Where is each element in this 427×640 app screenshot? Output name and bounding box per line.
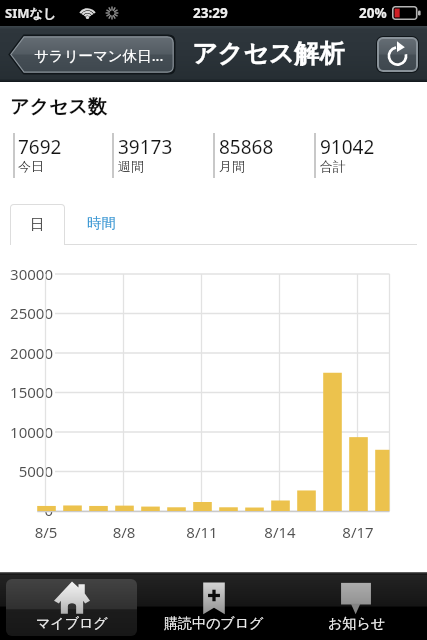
button[interactable]: 日 [10, 204, 65, 245]
staticText: 8/8 [99, 522, 149, 542]
staticText: 30000 [0, 264, 53, 284]
staticText: アクセス数 [10, 95, 107, 119]
staticText: 月間 [219, 158, 245, 174]
button[interactable]: マイブログ [6, 579, 137, 636]
staticText: 7692 [18, 134, 62, 160]
staticText: 購読中のブログ [164, 615, 264, 633]
staticText: 日 [30, 215, 45, 233]
button[interactable]: 時間 [66, 204, 136, 244]
staticText: 20000 [0, 343, 53, 363]
staticText: 8/17 [333, 522, 383, 542]
staticText: 週間 [118, 158, 144, 174]
staticText: 91042 [320, 134, 375, 160]
staticText: 8/11 [177, 522, 227, 542]
staticText: 85868 [219, 134, 274, 160]
button[interactable]: 購読中のブログ [149, 579, 279, 636]
button[interactable]: Refresh [377, 37, 418, 72]
staticText: 8/14 [255, 522, 305, 542]
staticText: 8/5 [21, 522, 71, 542]
staticText: 15000 [0, 382, 53, 402]
staticText: 5000 [0, 461, 53, 481]
staticText: 23:29 [193, 4, 228, 22]
staticText: お知らせ [328, 615, 385, 633]
staticText: 時間 [87, 214, 116, 232]
staticText: 0 [0, 500, 53, 520]
staticText: 今日 [18, 158, 44, 174]
staticText: 20% [359, 4, 387, 22]
staticText: 25000 [0, 303, 53, 323]
staticText: 39173 [118, 134, 173, 160]
button[interactable]: サラリーマン休日... [8, 35, 175, 74]
staticText: アクセス解析 [192, 38, 345, 69]
staticText: サラリーマン休日... [34, 45, 164, 65]
staticText: マイブログ [36, 615, 108, 633]
staticText: 10000 [0, 422, 53, 442]
staticText: SIMなし [5, 4, 57, 22]
staticText: 合計 [320, 158, 346, 174]
button[interactable]: お知らせ [291, 579, 421, 636]
